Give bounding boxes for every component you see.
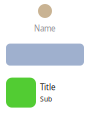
staticText: Sub xyxy=(40,94,52,103)
staticText: Name xyxy=(34,23,56,34)
staticText: Title xyxy=(40,82,56,92)
